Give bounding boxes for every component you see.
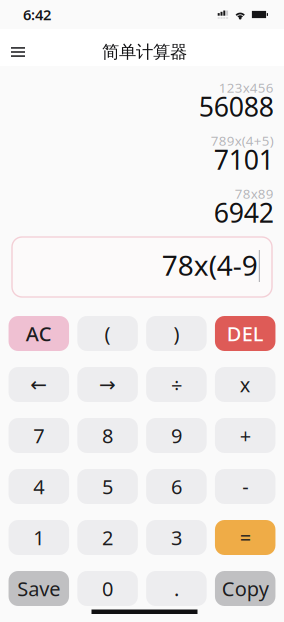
button[interactable]: Copy — [215, 571, 275, 606]
staticText: ( — [105, 320, 111, 347]
staticText: 3 — [171, 524, 182, 551]
staticText: → — [99, 373, 116, 396]
staticText: 6 — [171, 473, 182, 500]
button[interactable]: ÷ — [146, 367, 207, 402]
button[interactable]: → — [77, 367, 138, 402]
staticText: 123x456 — [219, 79, 274, 96]
staticText: 7101 — [214, 142, 274, 177]
button[interactable]: 8 — [77, 418, 138, 453]
button[interactable]: 2 — [77, 520, 138, 555]
staticText: . — [174, 575, 179, 602]
staticText: 78x(4-9 — [162, 246, 258, 284]
staticText: DEL — [227, 320, 264, 347]
staticText: 简单计算器 — [102, 41, 187, 63]
button[interactable]: Save — [9, 571, 69, 606]
staticText: ) — [173, 320, 179, 347]
staticText: x — [240, 371, 251, 398]
staticText: 8 — [102, 422, 113, 449]
staticText: + — [240, 422, 251, 449]
button[interactable]: 0 — [77, 571, 138, 606]
staticText: 7 — [33, 422, 44, 449]
staticText: 78x89 — [235, 185, 274, 202]
staticText: 56088 — [199, 89, 274, 124]
button[interactable]: - — [215, 469, 275, 504]
button[interactable]: 5 — [77, 469, 138, 504]
button[interactable]: Menu — [0, 29, 39, 66]
button[interactable]: AC — [9, 316, 69, 351]
staticText: AC — [26, 320, 52, 347]
staticText: 2 — [102, 524, 113, 551]
button[interactable]: 1 — [9, 520, 69, 555]
staticText: = — [240, 524, 251, 551]
staticText: ← — [30, 373, 47, 396]
staticText: 5 — [102, 473, 113, 500]
staticText: Copy — [222, 575, 269, 602]
staticText: 6:42 — [23, 5, 51, 24]
button[interactable]: 4 — [9, 469, 69, 504]
staticText: 1 — [33, 524, 44, 551]
button[interactable]: DEL — [215, 316, 275, 351]
staticText: ÷ — [171, 371, 182, 398]
button[interactable]: = — [215, 520, 275, 555]
button[interactable]: 9 — [146, 418, 207, 453]
button[interactable]: . — [146, 571, 207, 606]
button[interactable]: ) — [146, 316, 207, 351]
button[interactable]: 3 — [146, 520, 207, 555]
staticText: - — [242, 473, 248, 500]
button[interactable]: + — [215, 418, 275, 453]
button[interactable]: x — [215, 367, 275, 402]
staticText: 4 — [33, 473, 44, 500]
staticText: 789x(4+5) — [211, 132, 274, 149]
button[interactable]: ← — [9, 367, 69, 402]
staticText: 9 — [171, 422, 182, 449]
button[interactable]: 7 — [9, 418, 69, 453]
button[interactable]: ( — [77, 316, 138, 351]
staticText: Save — [17, 575, 60, 602]
staticText: 6942 — [214, 195, 274, 230]
staticText: 0 — [102, 575, 113, 602]
button[interactable]: 6 — [146, 469, 207, 504]
